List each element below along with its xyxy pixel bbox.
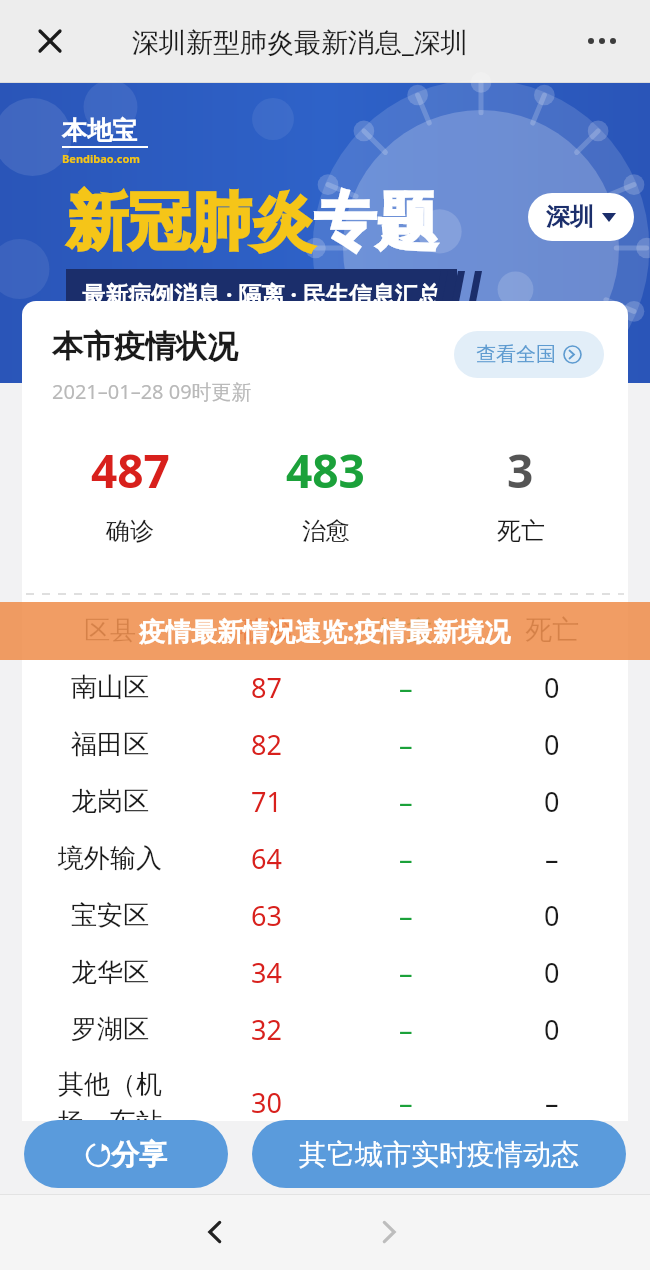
staticText: 本地宝 <box>62 115 137 146</box>
staticText: Bendibao.com <box>62 151 141 166</box>
staticText: 82 <box>251 726 282 763</box>
staticText: 确诊 <box>106 516 154 546</box>
staticText: 深圳新型肺炎最新消息_深圳 <box>132 23 468 60</box>
staticText: 34 <box>251 954 282 991</box>
staticText: 治愈 <box>302 516 350 546</box>
staticText: 新冠 <box>66 183 190 261</box>
staticText: – <box>399 726 413 763</box>
button[interactable]: Close <box>26 17 74 65</box>
staticText: – <box>399 954 413 991</box>
button[interactable]: 深圳 <box>528 193 634 241</box>
staticText: 宝安区 <box>71 899 149 932</box>
staticText: 0 <box>544 897 560 934</box>
staticText: 71 <box>251 783 282 820</box>
button[interactable]: More options <box>576 15 628 67</box>
staticText: – <box>399 840 413 877</box>
staticText: 福田区 <box>71 728 149 761</box>
staticText: – <box>399 783 413 820</box>
staticText: 0 <box>544 783 560 820</box>
staticText: 0 <box>544 954 560 991</box>
staticText: 63 <box>251 897 282 934</box>
staticText: 查看全国 <box>476 342 556 367</box>
staticText: 2021–01–28 09时更新 <box>52 378 252 405</box>
staticText: 0 <box>544 726 560 763</box>
staticText: – <box>545 1084 559 1121</box>
button[interactable]: 分享 <box>24 1120 228 1188</box>
staticText: – <box>545 840 559 877</box>
staticText: 30 <box>251 1084 282 1121</box>
staticText: – <box>399 1084 413 1121</box>
staticText: 64 <box>251 840 282 877</box>
staticText: 龙华区 <box>71 956 149 989</box>
staticText: 罗湖区 <box>71 1013 149 1046</box>
staticText: 区县 <box>84 614 136 647</box>
staticText: 境外输入 <box>58 842 162 875</box>
staticText: 0 <box>544 1011 560 1048</box>
staticText: 专题 <box>314 183 438 261</box>
staticText: 死亡 <box>497 516 545 546</box>
staticText: – <box>399 669 413 706</box>
staticText: 疫情最新情况速览:疫情最新境况 <box>139 613 511 649</box>
staticText: 483 <box>286 439 365 502</box>
button[interactable]: 其它城市实时疫情动态 <box>252 1120 626 1188</box>
staticText: 死亡 <box>525 613 579 647</box>
staticText: 分享 <box>111 1137 167 1172</box>
staticText: – <box>399 897 413 934</box>
staticText: 龙岗区 <box>71 785 149 818</box>
staticText: 治愈 <box>379 613 433 647</box>
staticText: 0 <box>544 669 560 706</box>
button[interactable]: Forward <box>361 1204 417 1260</box>
staticText: 其他（机 场、车站 <box>58 1068 162 1121</box>
staticText: – <box>399 1011 413 1048</box>
staticText: 确诊 <box>240 613 294 647</box>
button[interactable]: 查看全国 <box>454 331 604 378</box>
staticText: 3 <box>507 439 534 502</box>
button[interactable]: Back <box>187 1204 243 1260</box>
staticText: 本市疫情状况 <box>52 327 238 366</box>
staticText: 深圳 <box>546 202 594 232</box>
staticText: 南山区 <box>71 671 149 704</box>
staticText: 487 <box>91 439 170 502</box>
staticText: 32 <box>251 1011 282 1048</box>
staticText: 最新病例消息 · 隔离 · 民生信息汇总 <box>82 278 441 309</box>
staticText: 肺炎 <box>190 183 314 261</box>
staticText: 其它城市实时疫情动态 <box>299 1137 579 1172</box>
staticText: 87 <box>251 669 282 706</box>
